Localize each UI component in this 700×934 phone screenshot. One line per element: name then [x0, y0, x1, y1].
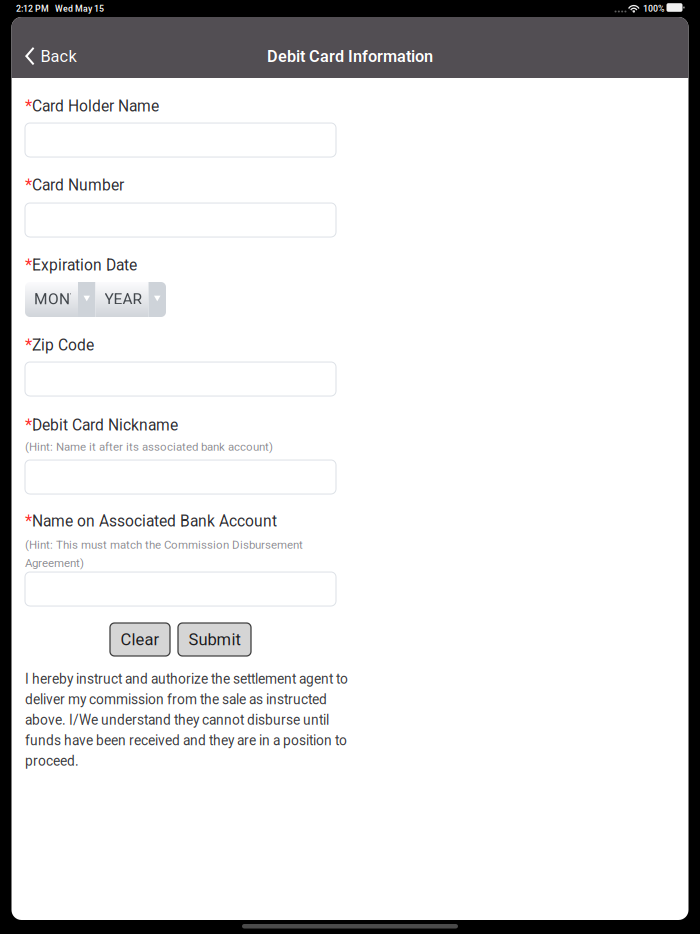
staticText: Name on Associated Bank Account [32, 512, 277, 530]
staticText: 100% [643, 3, 664, 14]
staticText: Back [40, 47, 76, 66]
staticText: * [25, 415, 32, 434]
staticText: Debit Card Nickname [32, 416, 178, 434]
button[interactable]: Clear [110, 623, 170, 656]
staticText: * [25, 96, 32, 115]
staticText: Expiration Date [32, 256, 137, 274]
staticText: Card Number [32, 176, 124, 194]
button[interactable]: Back [11, 34, 101, 78]
staticText: Debit Card Information [267, 47, 433, 66]
staticText: * [25, 255, 32, 274]
staticText: Zip Code [32, 336, 94, 354]
staticText: * [25, 335, 32, 354]
button[interactable]: MONTH [25, 282, 95, 317]
staticText: Submit [188, 630, 240, 649]
staticText: (Hint: Name it after its associated bank… [25, 440, 273, 453]
button[interactable]: Submit [178, 623, 251, 656]
staticText: Card Holder Name [32, 97, 159, 115]
staticText: 2:12 PM [16, 3, 49, 14]
staticText: I hereby instruct and authorize the sett… [25, 671, 348, 769]
staticText: MONTH [34, 290, 90, 308]
staticText: YEAR [104, 290, 142, 308]
staticText: (Hint: This must match the Commission Di… [25, 538, 303, 570]
staticText: Clear [120, 630, 159, 649]
button[interactable]: YEAR [95, 282, 166, 317]
staticText: * [25, 511, 32, 530]
staticText: * [25, 175, 32, 194]
staticText: Wed May 15 [55, 3, 104, 14]
